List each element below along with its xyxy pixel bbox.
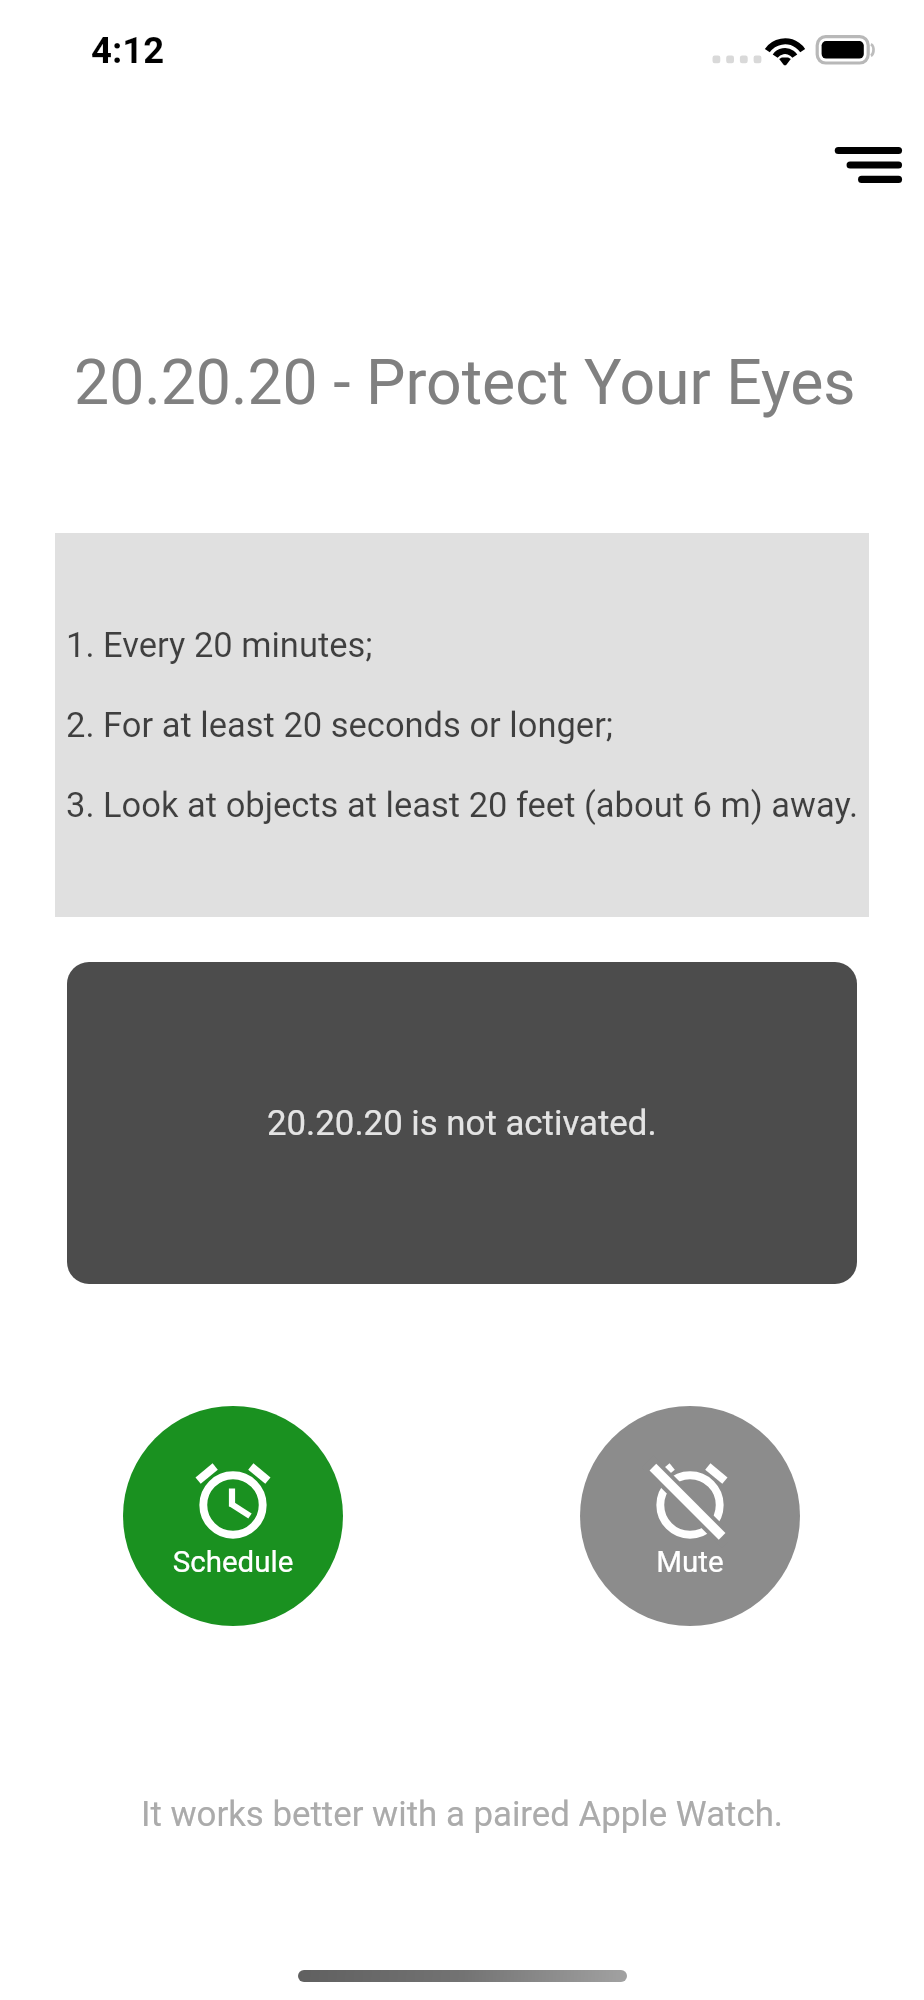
button[interactable]: Schedule xyxy=(123,1406,343,1626)
staticText: 4:12 xyxy=(91,29,165,72)
staticText: Mute xyxy=(580,1545,800,1580)
button[interactable]: 20.20.20 is not activated. xyxy=(67,962,857,1284)
staticText: 2. For at least 20 seconds or longer; xyxy=(66,705,614,745)
staticText: 20.20.20 - Protect Your Eyes xyxy=(74,346,856,419)
staticText: It works better with a paired Apple Watc… xyxy=(0,1794,924,1835)
button[interactable]: Mute xyxy=(580,1406,800,1626)
button[interactable]: Menu xyxy=(820,128,918,202)
staticText: Schedule xyxy=(123,1545,343,1580)
staticText: 1. Every 20 minutes; xyxy=(66,625,373,665)
staticText: 3. Look at objects at least 20 feet (abo… xyxy=(66,785,859,825)
staticText: 20.20.20 is not activated. xyxy=(267,1103,657,1144)
